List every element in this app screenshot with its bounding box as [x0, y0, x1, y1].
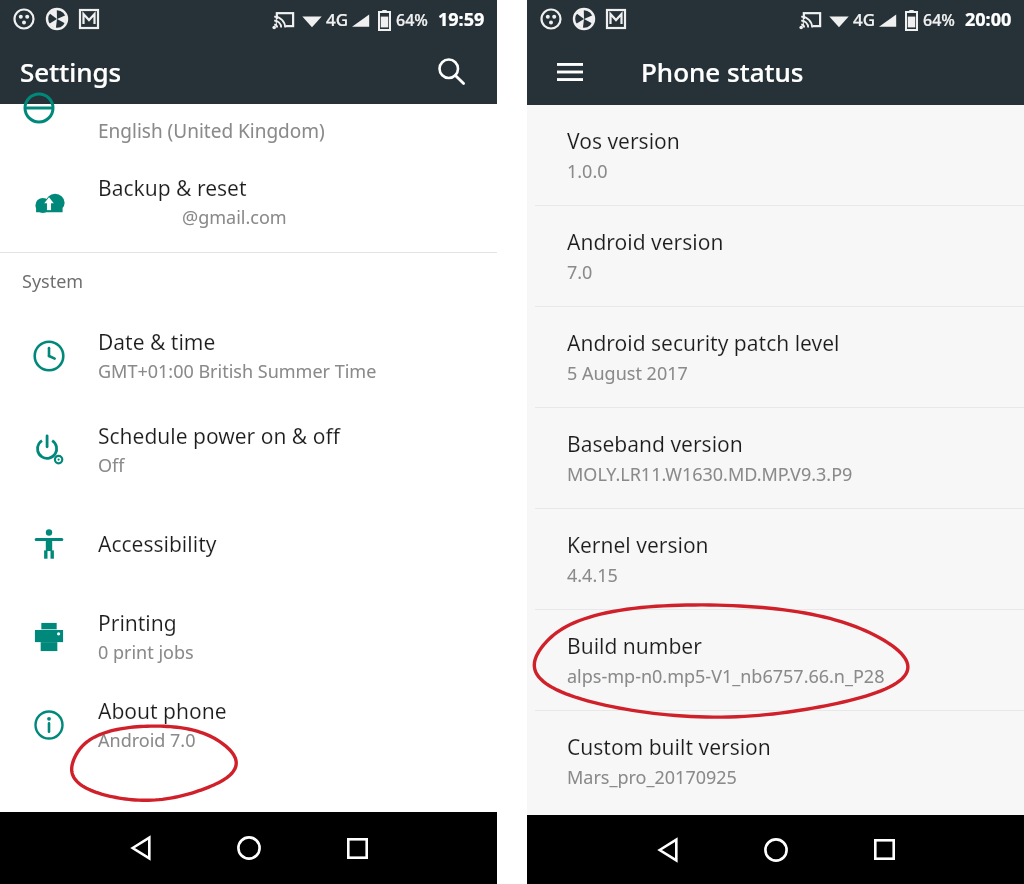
- staticText: 0 print jobs: [98, 640, 194, 665]
- staticText: GMT+01:00 British Summer Time: [98, 359, 377, 384]
- button[interactable]: Navigation menu: [547, 49, 593, 95]
- button[interactable]: Date & time: [0, 309, 497, 403]
- staticText: Baseband version: [567, 430, 743, 459]
- staticText: Kernel version: [567, 531, 709, 560]
- staticText: System: [22, 269, 84, 294]
- button[interactable]: Home: [722, 815, 830, 884]
- button[interactable]: Home: [195, 812, 303, 884]
- staticText: Android 7.0: [98, 728, 196, 753]
- button[interactable]: Android version: [527, 206, 1024, 306]
- staticText: Printing: [98, 609, 177, 638]
- button[interactable]: About phone: [0, 683, 497, 767]
- staticText: Settings: [20, 54, 122, 89]
- button[interactable]: Vos version: [527, 105, 1024, 205]
- staticText: 20:00: [965, 7, 1012, 32]
- staticText: Backup & reset: [98, 174, 247, 203]
- staticText: Off: [98, 453, 125, 478]
- staticText: 7.0: [567, 260, 593, 285]
- staticText: 4G: [853, 8, 876, 31]
- staticText: 5 August 2017: [567, 361, 688, 386]
- button[interactable]: Build number: [527, 610, 1024, 710]
- staticText: Android security patch level: [567, 329, 840, 358]
- staticText: 4.4.15: [567, 563, 618, 588]
- staticText: MOLY.LR11.W1630.MD.MP.V9.3.P9: [567, 462, 853, 487]
- button[interactable]: Back: [86, 812, 195, 884]
- button[interactable]: Recent apps: [303, 812, 411, 884]
- button[interactable]: Printing: [0, 591, 497, 683]
- button[interactable]: Custom built version: [527, 711, 1024, 811]
- button[interactable]: Kernel version: [527, 509, 1024, 609]
- staticText: 64%: [923, 9, 955, 31]
- button[interactable]: Search: [427, 47, 475, 95]
- staticText: alps-mp-n0.mp5-V1_nb6757.66.n_P28: [567, 664, 885, 689]
- staticText: 19:59: [438, 7, 485, 32]
- staticText: Date & time: [98, 328, 216, 357]
- staticText: Mars_pro_20170925: [567, 765, 737, 790]
- button[interactable]: Accessibility: [0, 497, 497, 591]
- staticText: Phone status: [641, 54, 804, 89]
- staticText: Android version: [567, 228, 724, 257]
- staticText: Vos version: [567, 127, 680, 156]
- staticText: Schedule power on & off: [98, 422, 340, 451]
- staticText: 64%: [396, 9, 428, 31]
- staticText: 1.0.0: [567, 159, 608, 184]
- staticText: Build number: [567, 632, 702, 661]
- button[interactable]: Android security patch level: [527, 307, 1024, 407]
- button[interactable]: Schedule power on & off: [0, 403, 497, 497]
- staticText: Accessibility: [98, 530, 217, 559]
- button[interactable]: Backup & reset: [0, 151, 497, 252]
- staticText: 4G: [326, 8, 349, 31]
- staticText: About phone: [98, 697, 227, 726]
- button[interactable]: Baseband version: [527, 408, 1024, 508]
- staticText: Custom built version: [567, 733, 771, 762]
- button[interactable]: Recent apps: [830, 815, 938, 884]
- staticText: English (United Kingdom): [98, 118, 325, 144]
- staticText: @gmail.com: [182, 205, 287, 230]
- button[interactable]: Back: [613, 815, 722, 884]
